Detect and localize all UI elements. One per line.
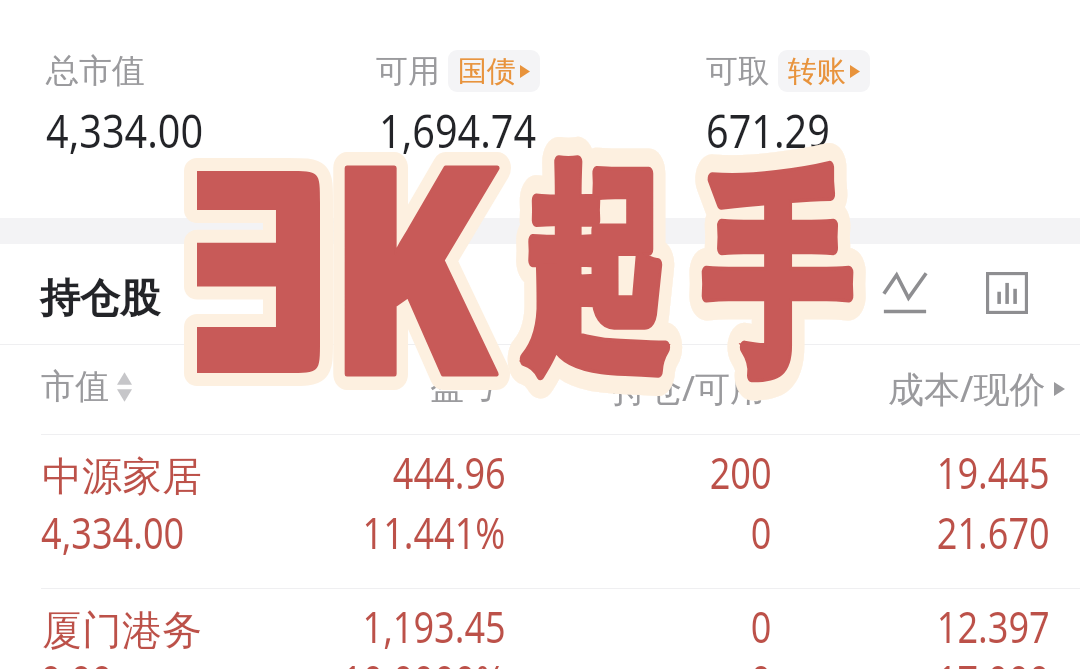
- staticText: 起: [524, 140, 663, 405]
- staticText: 200: [710, 442, 772, 502]
- staticText: 1,694.74: [379, 100, 536, 161]
- staticText: K: [328, 66, 497, 458]
- button[interactable]: 转账: [778, 50, 870, 92]
- button[interactable]: 成本/现价: [888, 364, 1065, 413]
- staticText: 11.441%: [362, 502, 506, 562]
- button[interactable]: Line chart view: [877, 266, 931, 320]
- staticText: 671.29: [706, 100, 830, 161]
- button[interactable]: 中源家居: [0, 434, 1080, 586]
- staticText: 0: [751, 596, 772, 656]
- button[interactable]: 国债: [448, 50, 540, 92]
- staticText: 转账: [788, 53, 846, 90]
- staticText: K: [328, 66, 497, 458]
- staticText: 中源家居: [42, 451, 202, 501]
- button[interactable]: 市值: [41, 365, 132, 408]
- staticText: 0: [751, 502, 772, 562]
- staticText: 市值: [41, 365, 109, 408]
- staticText: 手: [704, 151, 845, 411]
- staticText: 总市值: [46, 50, 145, 92]
- staticText: 17.000: [937, 650, 1050, 669]
- staticText: K: [328, 66, 497, 458]
- staticText: 可取: [706, 51, 770, 91]
- staticText: 厦门港务: [42, 605, 202, 655]
- staticText: 起: [524, 140, 663, 405]
- staticText: 9.99: [41, 650, 113, 669]
- button[interactable]: 厦门港务: [0, 588, 1080, 669]
- button[interactable]: 持仓/可用: [612, 364, 766, 412]
- staticText: 0: [751, 650, 772, 669]
- staticText: 21.670: [937, 502, 1050, 562]
- staticText: 444.96: [393, 442, 506, 502]
- staticText: 手: [704, 151, 845, 411]
- staticText: 4,334.00: [46, 100, 203, 161]
- staticText: 12.397: [937, 596, 1050, 656]
- button[interactable]: 盈亏: [430, 365, 498, 408]
- button[interactable]: Bar chart view: [980, 266, 1034, 320]
- staticText: 19.445: [937, 442, 1050, 502]
- staticText: 1,193.45: [362, 596, 506, 656]
- staticText: 成本/现价: [888, 364, 1046, 413]
- staticText: 手: [704, 151, 845, 411]
- staticText: 持仓股: [40, 273, 160, 323]
- staticText: 可用: [376, 51, 440, 91]
- staticText: 国债: [458, 53, 516, 90]
- staticText: 10.0000%: [342, 650, 506, 669]
- staticText: 起: [524, 140, 663, 405]
- staticText: 4,334.00: [41, 502, 184, 562]
